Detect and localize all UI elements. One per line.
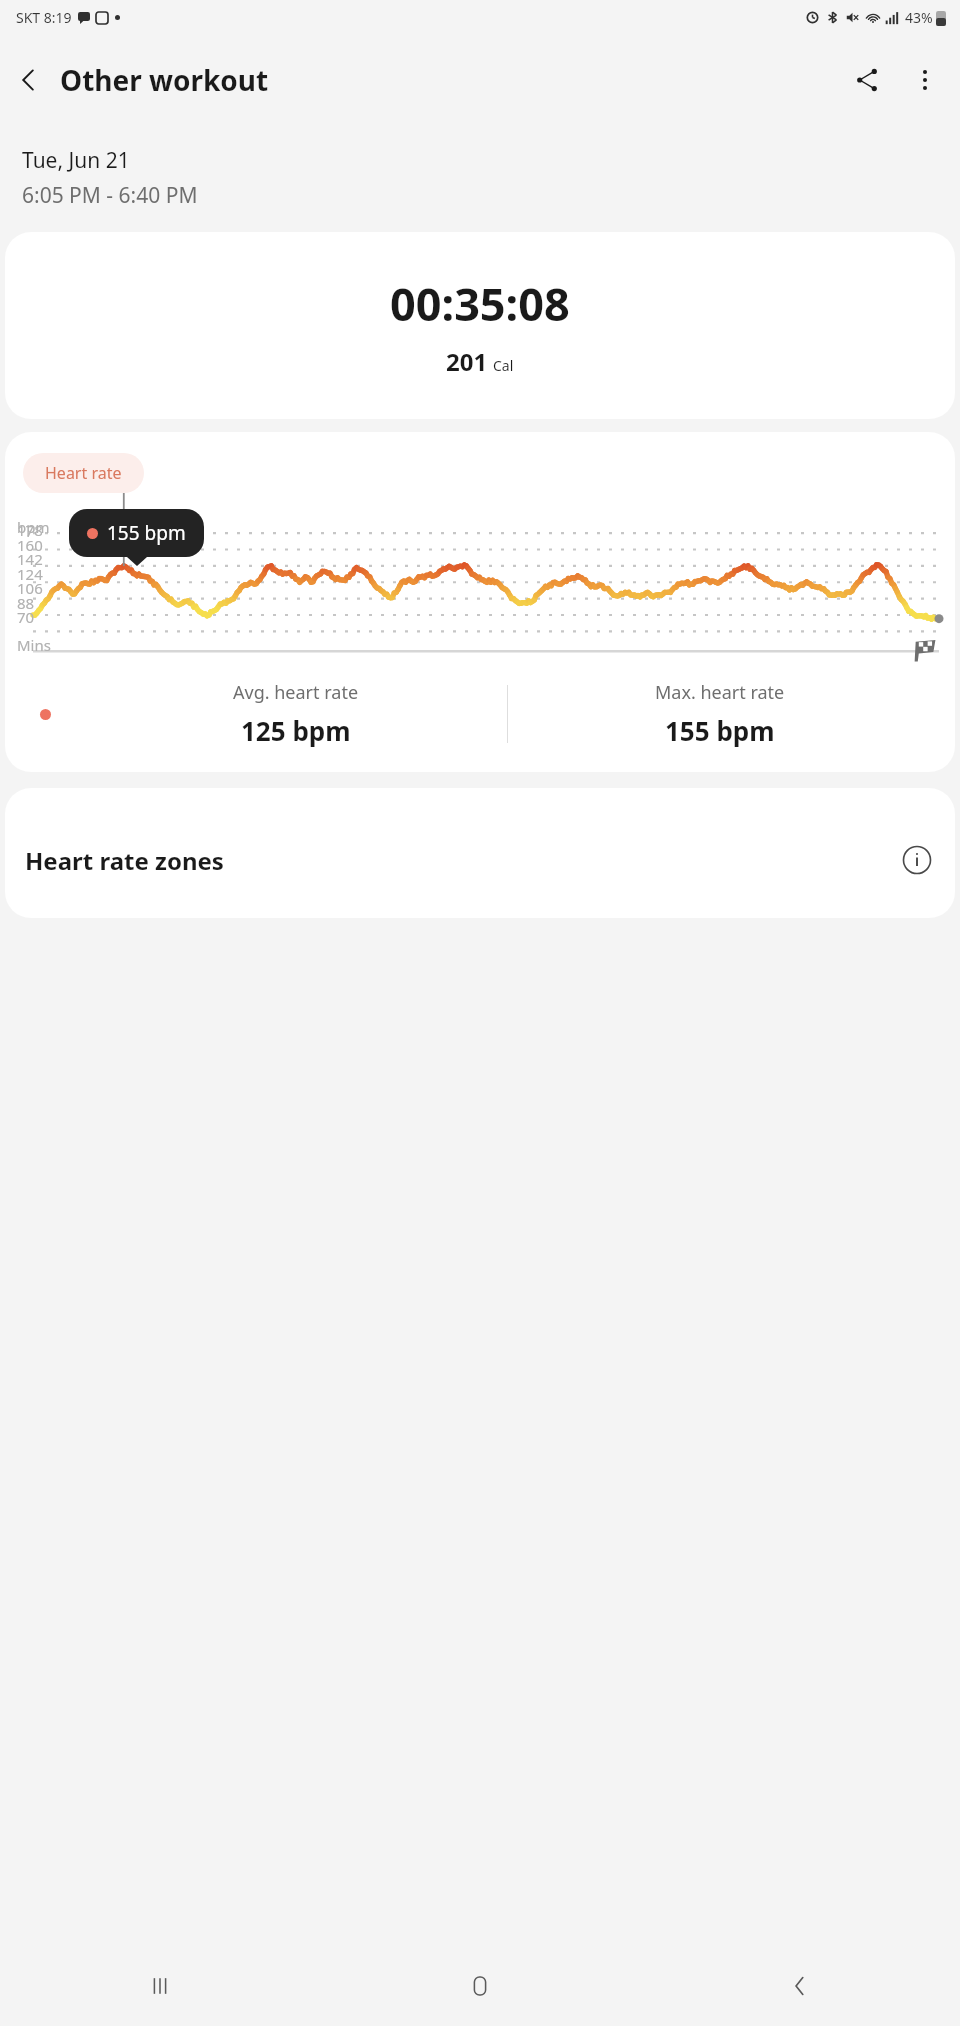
staticText: Heart rate zones <box>25 844 224 877</box>
staticText: 160 <box>17 535 43 555</box>
staticText: 70 <box>17 607 35 627</box>
staticText: 00:35:08 <box>390 273 570 334</box>
staticText: 106 <box>17 578 43 598</box>
staticText: 6:05 PM - 6:40 PM <box>22 181 198 210</box>
staticText: Cal <box>493 356 514 375</box>
staticText: Mins <box>17 635 51 655</box>
staticText: Max. heart rate <box>655 680 785 705</box>
button[interactable]: Heart rate <box>23 453 144 493</box>
staticText: 142 <box>17 549 43 569</box>
staticText: Avg. heart rate <box>233 680 359 705</box>
staticText: bpm <box>17 517 50 537</box>
other: Finish <box>911 638 937 664</box>
staticText: Heart rate <box>45 462 122 484</box>
staticText: 155 bpm <box>107 520 186 546</box>
button[interactable]: More options <box>896 51 954 109</box>
button[interactable]: Back <box>0 51 58 109</box>
staticText: 125 bpm <box>241 713 351 748</box>
staticText: Tue, Jun 21 <box>22 146 130 175</box>
button[interactable]: Heart rate zones <box>5 788 955 918</box>
button[interactable]: 00:35:08 <box>5 232 955 419</box>
staticText: 124 <box>17 564 43 584</box>
staticText: Other workout <box>60 61 269 99</box>
button[interactable]: Share <box>838 51 896 109</box>
staticText: 201 <box>446 345 488 378</box>
button[interactable]: Information <box>899 842 935 878</box>
staticText: 178 <box>17 520 43 540</box>
button[interactable]: Home <box>320 1946 640 2026</box>
staticText: SKT 8:19 <box>16 8 72 27</box>
staticText: 88 <box>17 593 35 613</box>
button[interactable]: 155 bpm <box>69 509 204 557</box>
button[interactable]: Back <box>640 1946 960 2026</box>
staticText: 43% <box>905 8 933 27</box>
button[interactable]: Recents <box>0 1946 320 2026</box>
staticText: 155 bpm <box>665 713 775 748</box>
